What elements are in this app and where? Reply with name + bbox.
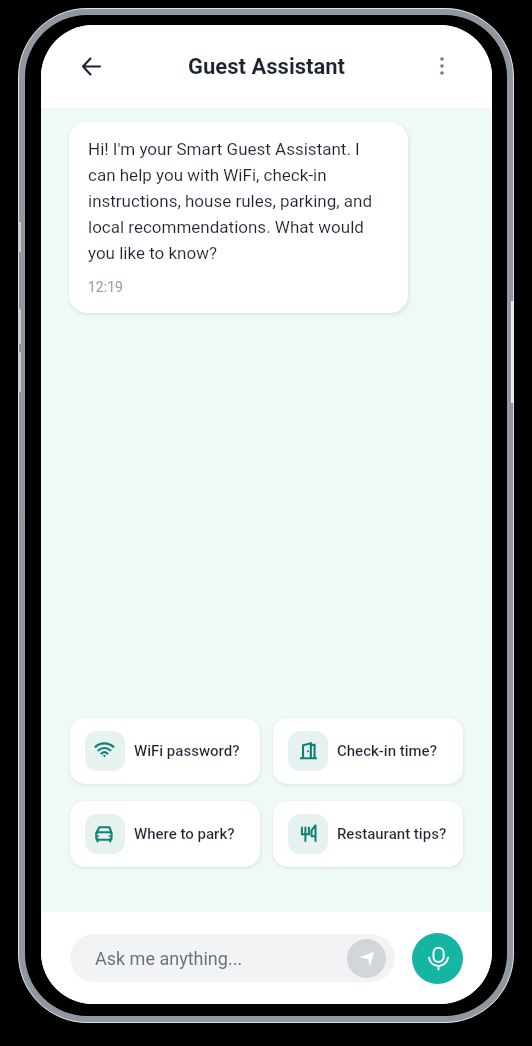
staticText: Ask me anything...: [95, 948, 347, 969]
staticText: Guest Assistant: [188, 54, 346, 80]
staticText: Where to park?: [134, 825, 235, 843]
staticText: 12:19: [88, 279, 123, 295]
button[interactable]: Voice input: [412, 933, 463, 984]
button[interactable]: More options: [420, 44, 464, 88]
button[interactable]: Back: [69, 44, 113, 88]
button[interactable]: Restaurant tips?: [273, 801, 463, 867]
button[interactable]: Send: [347, 939, 386, 978]
staticText: Check-in time?: [337, 742, 437, 760]
button[interactable]: WiFi password?: [70, 718, 260, 784]
staticText: Restaurant tips?: [337, 825, 447, 843]
staticText: Hi! I'm your Smart Guest Assistant. I ca…: [88, 134, 390, 264]
staticText: WiFi password?: [134, 742, 240, 760]
button[interactable]: Where to park?: [70, 801, 260, 867]
button[interactable]: Check-in time?: [273, 718, 463, 784]
button[interactable]: Ask me anything...: [70, 934, 395, 982]
